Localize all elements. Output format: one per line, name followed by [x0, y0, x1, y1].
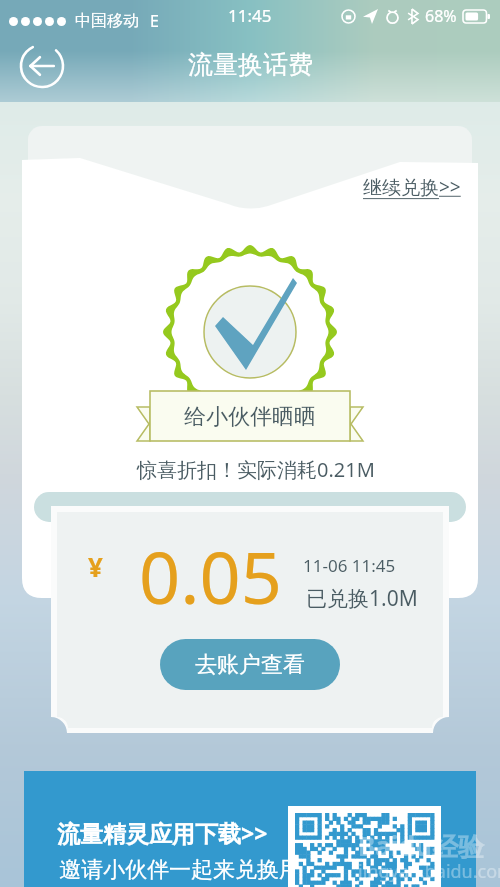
- staticText: E: [150, 10, 159, 32]
- staticText: 68%: [425, 5, 457, 27]
- staticText: 中国移动: [75, 11, 139, 31]
- staticText: ¥: [88, 549, 103, 584]
- staticText: 已兑换1.0M: [306, 584, 418, 613]
- staticText: 流量精灵应用下载>>: [57, 817, 268, 848]
- staticText: 11:45: [228, 4, 272, 27]
- staticText: Baidu经验: [358, 828, 484, 864]
- staticText: 11-06 11:45: [303, 554, 396, 577]
- staticText: 惊喜折扣！实际消耗0.21M: [137, 456, 375, 483]
- button[interactable]: 去账户查看: [160, 639, 340, 690]
- button[interactable]: 继续兑换>>: [363, 174, 461, 200]
- staticText: 邀请小伙伴一起来兑换用不: [59, 856, 323, 884]
- staticText: jingyan.baidu.com: [358, 859, 500, 884]
- staticText: 去账户查看: [195, 651, 305, 679]
- staticText: 流量换话费: [188, 49, 313, 80]
- button[interactable]: 流量精灵应用下载>>: [24, 771, 476, 887]
- button[interactable]: Back: [16, 40, 68, 92]
- button[interactable]: 给小伙伴晒晒: [150, 392, 350, 442]
- staticText: 给小伙伴晒晒: [184, 403, 316, 431]
- staticText: 0.05: [139, 527, 282, 625]
